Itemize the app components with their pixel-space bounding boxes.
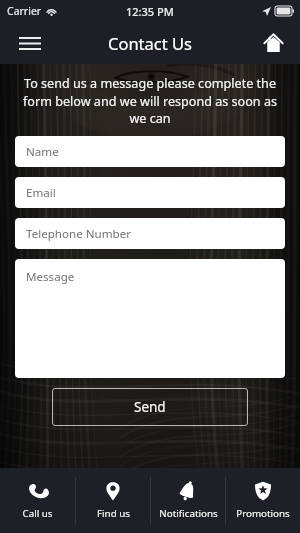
button[interactable]: Notifications [151,468,225,533]
button[interactable]: Email [15,177,285,208]
button[interactable]: Find us [76,468,150,533]
staticText: To send us a message please complete the… [16,75,284,126]
button[interactable]: Open navigation menu [12,28,48,58]
button[interactable]: Home [257,28,289,58]
button[interactable]: Name [15,136,285,167]
button[interactable]: Message [15,259,285,378]
staticText: Name [26,144,59,160]
staticText: Send [134,398,166,416]
button[interactable]: Telephone Number [15,218,285,249]
button[interactable]: Call us [0,468,75,533]
staticText: 12:35 PM [126,4,174,19]
staticText: Promotions [236,507,290,520]
staticText: Telephone Number [26,226,132,242]
button[interactable]: Promotions [226,468,300,533]
staticText: Notifications [159,507,218,520]
staticText: Contact Us [108,32,192,54]
staticText: Find us [97,507,130,520]
staticText: Carrier [7,4,42,18]
staticText: Message [26,269,75,285]
staticText: Email [26,185,56,201]
staticText: Call us [22,507,53,520]
button[interactable]: Send [52,388,248,426]
